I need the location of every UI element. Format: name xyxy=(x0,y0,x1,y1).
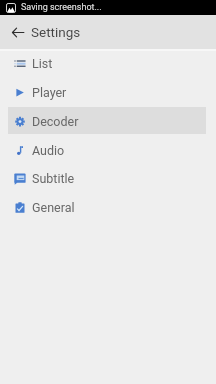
staticText: List xyxy=(32,56,53,71)
button[interactable]: Subtitle xyxy=(8,164,206,191)
staticText: Audio xyxy=(32,143,65,158)
staticText: Decoder xyxy=(32,114,79,129)
button[interactable]: Decoder xyxy=(8,107,206,134)
button[interactable]: List xyxy=(8,49,206,76)
button[interactable]: Player xyxy=(8,78,206,105)
staticText: Saving screenshot... xyxy=(21,2,102,13)
staticText: Settings xyxy=(31,24,81,40)
button[interactable]: General xyxy=(8,193,206,220)
staticText: Subtitle xyxy=(32,171,75,186)
staticText: General xyxy=(32,200,75,215)
staticText: Player xyxy=(32,85,67,100)
button[interactable]: Back xyxy=(7,21,29,43)
button[interactable]: Audio xyxy=(8,136,206,163)
